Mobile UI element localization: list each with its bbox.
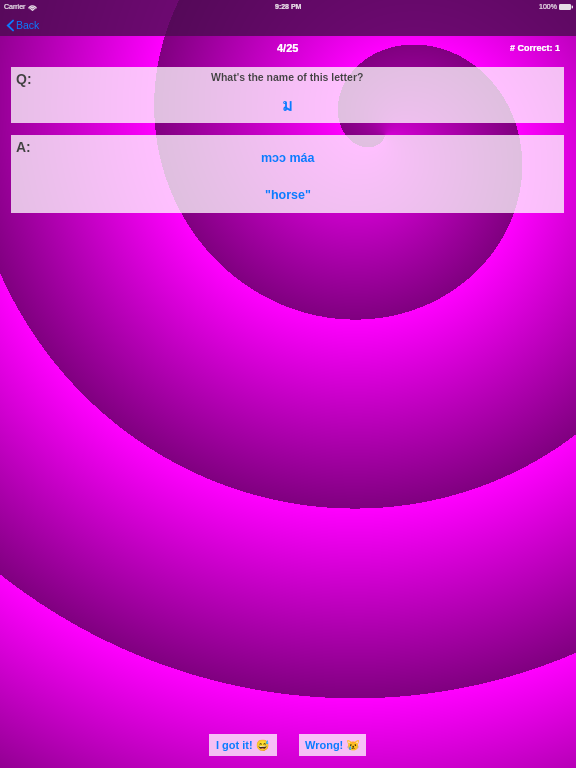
staticText: 100% bbox=[539, 3, 557, 11]
staticText: Carrier bbox=[4, 3, 26, 11]
button[interactable]: I got it! 😅 bbox=[209, 734, 277, 756]
staticText: Q: bbox=[16, 71, 32, 87]
staticText: What's the name of this letter? bbox=[211, 71, 364, 83]
staticText: I got it! 😅 bbox=[216, 739, 270, 752]
staticText: mɔɔ máa bbox=[261, 151, 315, 165]
staticText: Wrong! 😿 bbox=[305, 739, 361, 752]
staticText: # Correct: 1 bbox=[510, 43, 561, 53]
staticText: Back bbox=[16, 19, 40, 31]
staticText: "horse" bbox=[265, 188, 311, 202]
staticText: 9:28 PM bbox=[275, 3, 302, 11]
button[interactable]: Back bbox=[5, 15, 42, 35]
staticText: A: bbox=[16, 139, 31, 155]
staticText: ม bbox=[282, 91, 294, 118]
button[interactable]: Wrong! 😿 bbox=[299, 734, 366, 756]
staticText: 4/25 bbox=[277, 42, 299, 54]
